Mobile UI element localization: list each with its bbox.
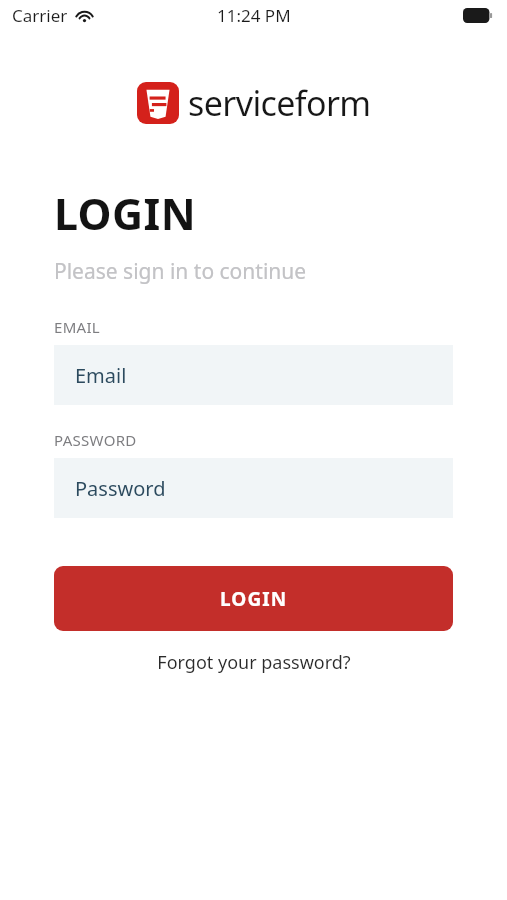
button[interactable]: Email <box>54 345 453 405</box>
button[interactable]: Forgot your password? <box>54 645 453 680</box>
staticText: Forgot your password? <box>157 650 351 675</box>
button[interactable]: Password <box>54 458 453 518</box>
staticText: Please sign in to continue <box>54 257 307 286</box>
staticText: 11:24 PM <box>217 4 291 27</box>
staticText: EMAIL <box>54 317 100 337</box>
button[interactable]: LOGIN <box>54 566 453 631</box>
staticText: Carrier <box>12 4 68 27</box>
staticText: PASSWORD <box>54 430 137 450</box>
staticText: LOGIN <box>54 184 197 243</box>
staticText: Password <box>75 475 166 502</box>
staticText: serviceform <box>188 80 371 126</box>
other: Serviceform logo <box>137 82 179 124</box>
staticText: Email <box>75 362 127 389</box>
staticText: LOGIN <box>220 586 288 612</box>
